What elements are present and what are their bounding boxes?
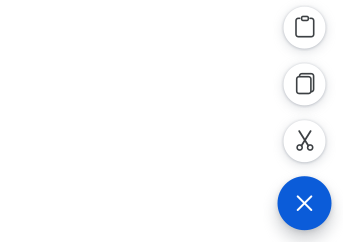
- button[interactable]: Close menu: [277, 176, 331, 230]
- button[interactable]: Cut: [283, 120, 325, 162]
- button[interactable]: Copy: [283, 63, 325, 105]
- button[interactable]: Paste: [283, 7, 325, 49]
